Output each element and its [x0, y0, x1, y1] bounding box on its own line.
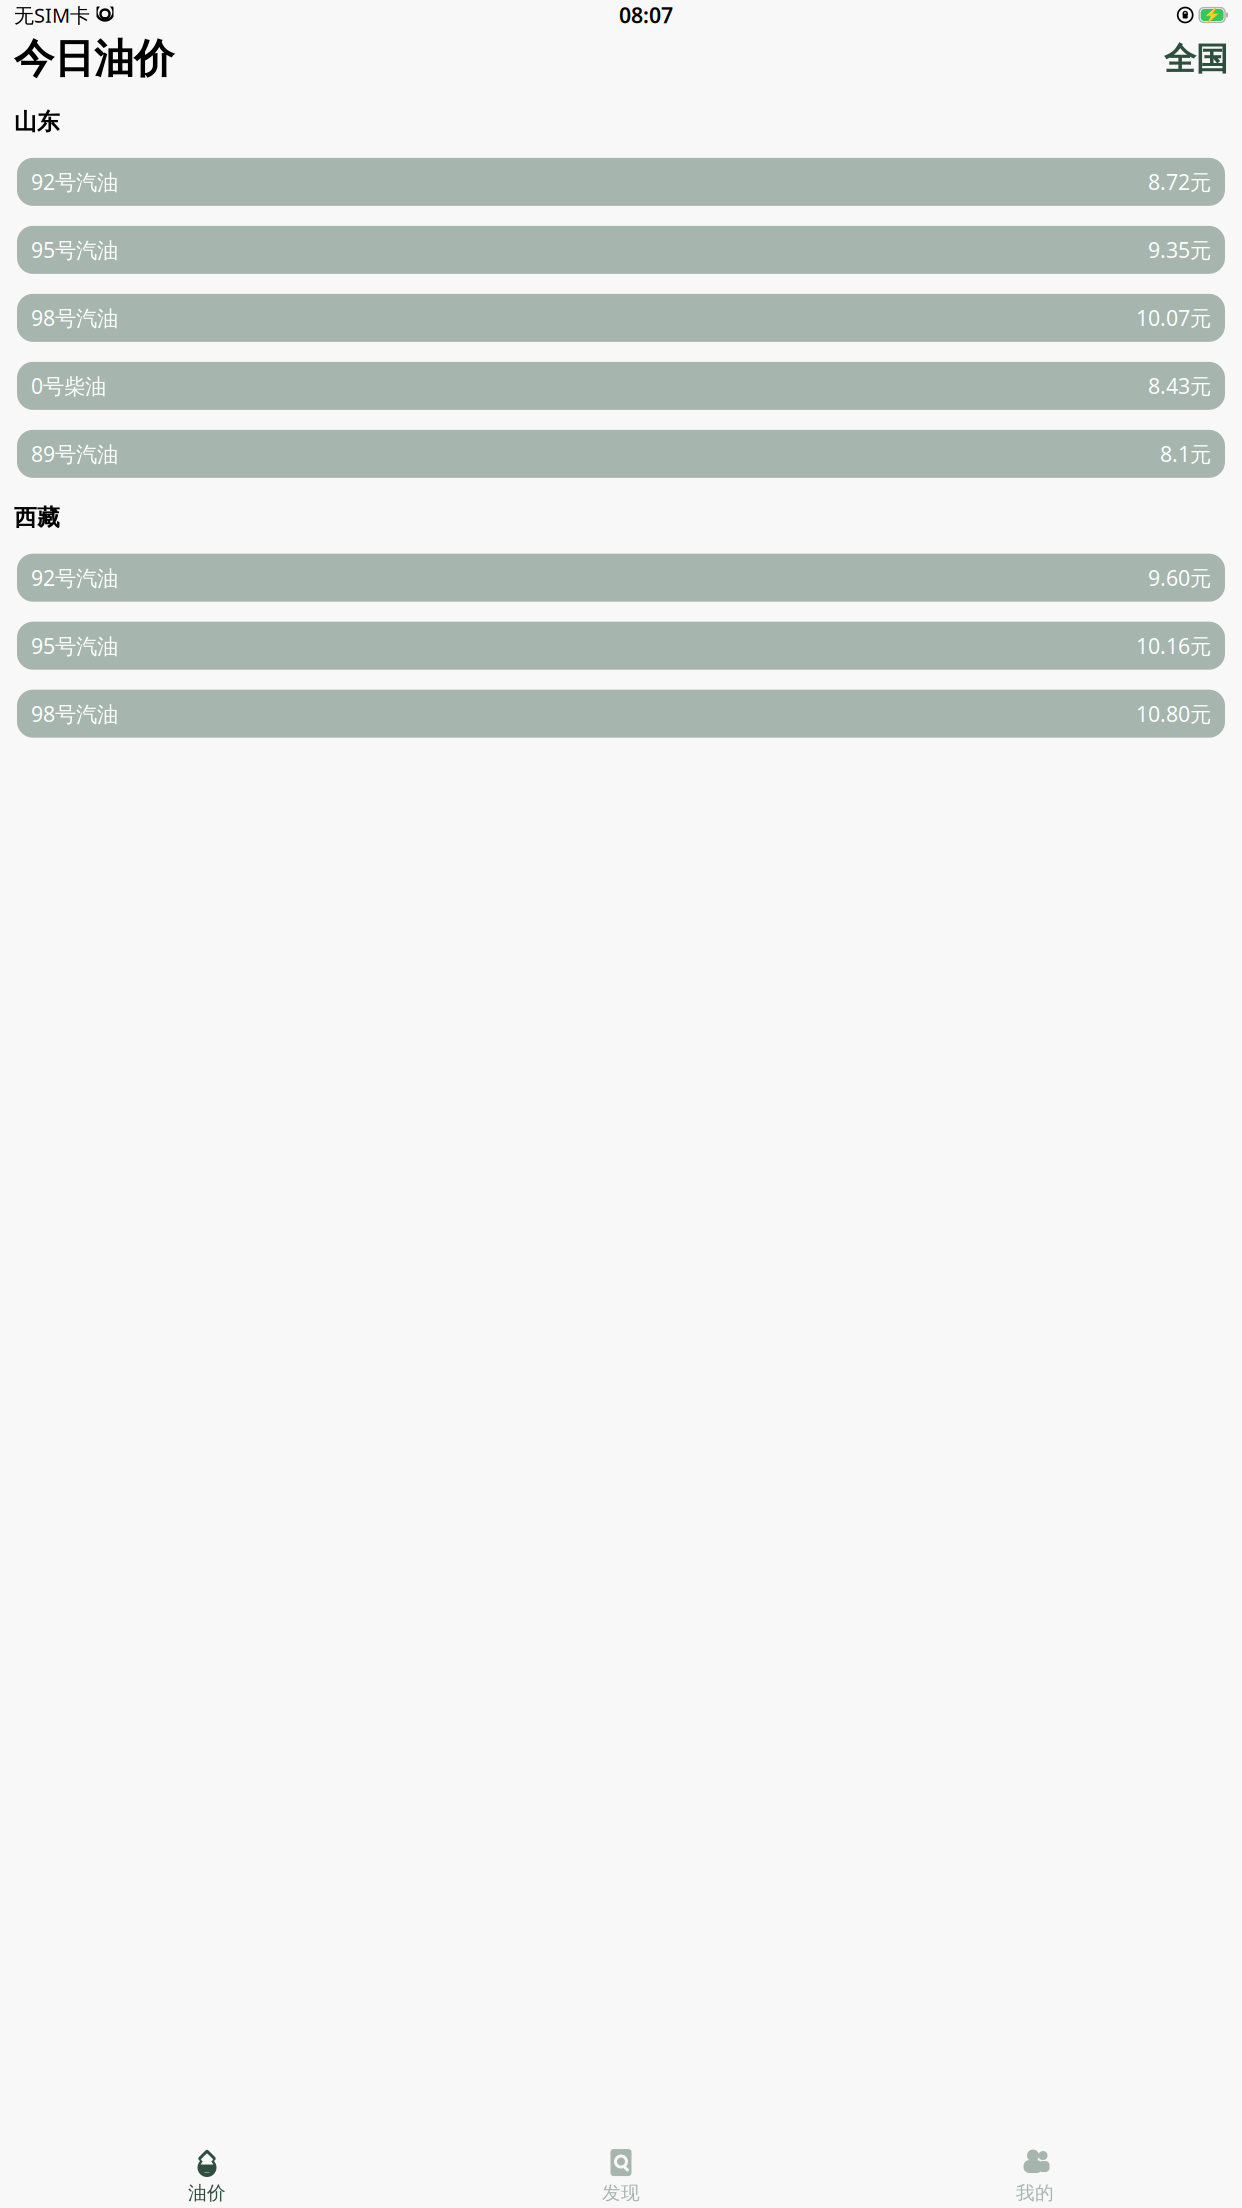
staticText: 9.60元: [1148, 563, 1211, 592]
button[interactable]: 0号柴油: [17, 362, 1225, 410]
staticText: 98号汽油: [31, 699, 118, 728]
staticText: 全国: [1164, 39, 1228, 79]
staticText: 无SIM卡: [14, 2, 90, 28]
staticText: 89号汽油: [31, 440, 118, 468]
staticText: 8.1元: [1160, 440, 1211, 468]
button[interactable]: 89号汽油: [17, 430, 1225, 478]
staticText: 发现: [602, 2181, 640, 2204]
button[interactable]: 98号汽油: [17, 690, 1225, 738]
staticText: 油价: [188, 2181, 226, 2204]
staticText: ⚡: [1203, 7, 1221, 23]
button[interactable]: 95号汽油: [17, 622, 1225, 670]
staticText: 8.43元: [1148, 372, 1211, 400]
staticText: 0号柴油: [31, 372, 106, 400]
button[interactable]: 95号汽油: [17, 226, 1225, 274]
staticText: 92号汽油: [31, 563, 118, 592]
staticText: 8.72元: [1148, 168, 1211, 196]
button[interactable]: 全国: [1164, 39, 1228, 79]
staticText: 95号汽油: [31, 631, 118, 660]
staticText: 92号汽油: [31, 168, 118, 196]
staticText: 98号汽油: [31, 304, 118, 332]
button[interactable]: 发现: [414, 2146, 828, 2206]
button[interactable]: 我的: [828, 2146, 1242, 2206]
staticText: 9.35元: [1148, 236, 1211, 264]
staticText: 10.80元: [1136, 699, 1211, 728]
staticText: 西藏: [14, 504, 60, 532]
button[interactable]: 92号汽油: [17, 554, 1225, 602]
staticText: 我的: [1016, 2181, 1054, 2204]
button[interactable]: 92号汽油: [17, 158, 1225, 206]
button[interactable]: 油价: [0, 2146, 414, 2206]
staticText: 10.16元: [1136, 631, 1211, 660]
staticText: 95号汽油: [31, 236, 118, 264]
staticText: 山东: [14, 108, 60, 136]
staticText: 10.07元: [1136, 304, 1211, 332]
staticText: 08:07: [619, 1, 673, 29]
button[interactable]: 98号汽油: [17, 294, 1225, 342]
staticText: 今日油价: [14, 34, 174, 83]
